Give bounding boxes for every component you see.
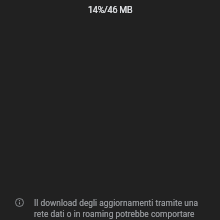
button[interactable]: More information [0, 180, 220, 220]
other: More information [14, 197, 25, 208]
staticText: 14%/46 MB [88, 5, 133, 16]
staticText: Il download degli aggiornamenti tramite … [34, 198, 206, 219]
